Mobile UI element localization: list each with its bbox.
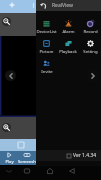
staticText: Playback (59, 48, 77, 54)
button[interactable]: Screenshot (18, 151, 36, 165)
staticText: Record (83, 28, 98, 34)
button[interactable]: Stop (18, 142, 24, 148)
button[interactable]: Picture (36, 40, 57, 60)
staticText: Play (5, 159, 14, 165)
button[interactable]: Setting (79, 40, 101, 60)
staticText: Setting (83, 48, 98, 54)
button[interactable]: Hide keyboard (4, 166, 14, 176)
button[interactable]: Record (79, 20, 101, 40)
button[interactable]: Playback (57, 40, 79, 60)
button[interactable]: Ver 1.4.34 (36, 150, 101, 161)
button[interactable]: RealView (36, 0, 101, 11)
button[interactable]: Move (9, 2, 15, 8)
button[interactable]: Zoom in (2, 123, 11, 132)
button[interactable]: Back (67, 166, 77, 176)
button[interactable]: Next (87, 70, 99, 82)
staticText: Alarm (62, 28, 75, 34)
button[interactable]: Zoom out (2, 17, 11, 26)
staticText: DeviceList (36, 28, 57, 34)
staticText: Invite (41, 68, 53, 74)
staticText: RealView (52, 2, 73, 9)
staticText: Screenshot (18, 159, 36, 165)
staticText: Picture (39, 48, 54, 54)
button[interactable]: Recents (22, 166, 32, 176)
button[interactable]: Alarm (57, 20, 79, 40)
button[interactable]: Play (0, 151, 18, 165)
staticText: Ver 1.4.34 (73, 152, 97, 159)
button[interactable]: Home (45, 166, 55, 176)
button[interactable]: DeviceList (36, 20, 57, 40)
button[interactable]: Previous (5, 70, 16, 81)
button[interactable]: Invite (36, 60, 57, 80)
